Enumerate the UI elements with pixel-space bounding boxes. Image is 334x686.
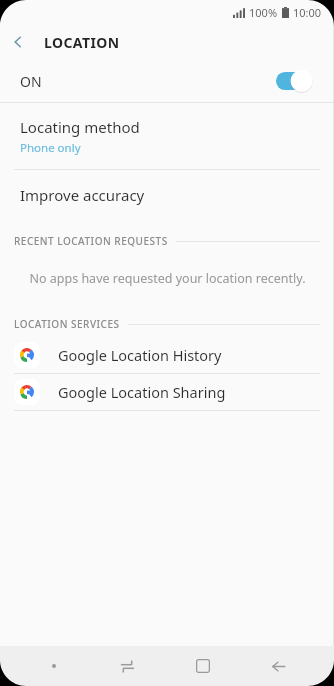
button[interactable]: Locating method xyxy=(0,103,334,169)
button[interactable]: Improve accuracy xyxy=(0,170,334,220)
staticText: Phone only xyxy=(20,140,81,156)
button[interactable]: Home xyxy=(183,646,223,686)
button[interactable]: Google Location Sharing xyxy=(0,374,334,410)
staticText: Google Location Sharing xyxy=(58,382,226,402)
staticText: Improve accuracy xyxy=(20,185,145,205)
button[interactable]: Location on xyxy=(276,70,318,92)
staticText: RECENT LOCATION REQUESTS xyxy=(14,234,168,248)
button[interactable]: Recents xyxy=(107,646,147,686)
staticText: 100% xyxy=(249,5,278,20)
staticText: Google Location History xyxy=(58,345,222,365)
button[interactable]: Back xyxy=(258,646,298,686)
button[interactable]: Back xyxy=(0,24,36,60)
staticText: ON xyxy=(20,72,42,91)
button[interactable]: ON xyxy=(0,60,334,102)
button[interactable]: Google Location History xyxy=(0,337,334,373)
staticText: LOCATION xyxy=(44,33,120,52)
staticText: Locating method xyxy=(20,117,140,137)
staticText: No apps have requested your location rec… xyxy=(29,270,306,287)
staticText: 10:00 xyxy=(293,5,322,20)
staticText: LOCATION SERVICES xyxy=(14,317,120,331)
